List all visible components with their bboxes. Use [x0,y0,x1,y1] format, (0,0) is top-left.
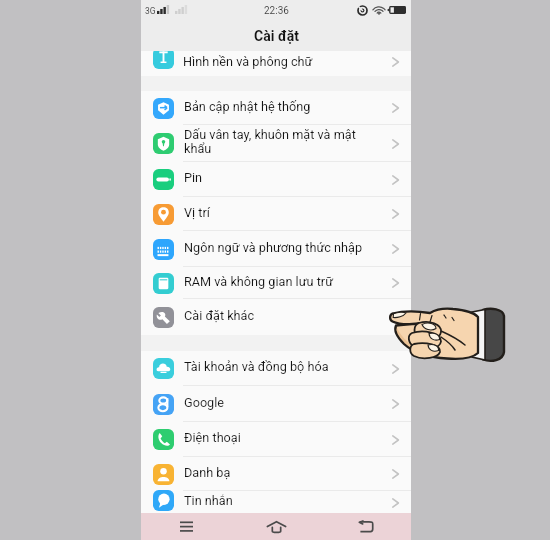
staticText: Bản cập nhật hệ thống [184,99,311,114]
staticText: Pin [184,170,203,185]
staticText: 22:36 [264,5,289,17]
button[interactable]: Pin [141,162,411,197]
staticText: Dấu vân tay, khuôn mặt và mật khẩu [184,127,366,157]
staticText: Google [184,395,225,410]
button[interactable]: Hình nền và phông chữ [141,51,411,76]
button[interactable]: Tài khoản và đồng bộ hóa [141,351,411,386]
button[interactable]: Điện thoại [141,422,411,457]
button[interactable]: Recent apps [141,513,231,540]
staticText: Vị trí [184,205,210,220]
staticText: Cài đặt khác [184,308,255,323]
button[interactable]: Home [231,513,321,540]
staticText: Điện thoại [184,430,241,445]
button[interactable]: Dấu vân tay, khuôn mặt và mật khẩu [141,125,411,162]
staticText: Danh bạ [184,465,231,480]
staticText: Ngôn ngữ và phương thức nhập [184,240,363,255]
button[interactable]: Back [321,513,411,540]
staticText: Hình nền và phông chữ [183,54,313,69]
button[interactable]: Bản cập nhật hệ thống [141,91,411,125]
button[interactable]: Cài đặt khác [141,299,411,335]
button[interactable]: RAM và không gian lưu trữ [141,267,411,299]
button[interactable]: Ngôn ngữ và phương thức nhập [141,231,411,267]
button[interactable]: Google [141,386,411,422]
staticText: Tin nhắn [184,493,233,508]
staticText: 3G [145,6,156,16]
staticText: RAM và không gian lưu trữ [184,274,333,289]
button[interactable]: Vị trí [141,197,411,231]
staticText: Tài khoản và đồng bộ hóa [184,359,329,374]
button[interactable]: Tin nhắn [141,491,411,514]
button[interactable]: Danh bạ [141,457,411,491]
staticText: Cài đặt [254,28,299,44]
